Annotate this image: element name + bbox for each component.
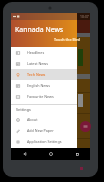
button[interactable]: About [11,114,77,125]
button[interactable]: English News [11,80,77,91]
button[interactable]: Add [80,121,91,132]
staticText: Touch the Bird [54,37,80,42]
button[interactable]: Recent apps [64,148,90,160]
button[interactable]: Headlines [11,47,77,58]
button[interactable]: Add New Paper [11,125,77,136]
button[interactable]: Favourite News [11,91,77,102]
staticText: Favourite News [27,94,54,99]
staticText: Application Settings [27,139,62,144]
staticText: Add New Paper [27,128,54,133]
staticText: Tech News [27,72,46,77]
staticText: About [27,117,38,122]
button[interactable]: Back [11,148,38,160]
staticText: 10:37 [80,14,89,19]
button[interactable]: Latest News [11,58,77,69]
staticText: Kannada News [15,25,64,34]
button[interactable]: Tech News [11,69,77,80]
staticText: English News [27,83,50,88]
button[interactable]: Application Settings [11,136,77,147]
staticText: Settings [16,107,31,112]
staticText: Headlines [27,50,45,55]
staticText: Latest News [27,61,48,66]
button[interactable]: Home [38,148,64,160]
